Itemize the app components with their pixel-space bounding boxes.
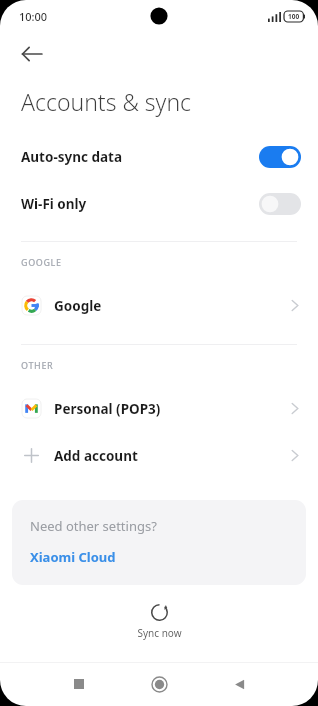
button[interactable]: Home [140, 665, 178, 703]
staticText: Personal (POP3) [54, 400, 161, 418]
button[interactable]: Back [220, 665, 258, 703]
button[interactable]: Need other settings? [12, 500, 306, 585]
button[interactable]: Wi-Fi only [0, 180, 318, 227]
staticText: Google [54, 297, 102, 315]
button[interactable]: Recents [60, 665, 98, 703]
button[interactable]: Add account [0, 432, 318, 479]
staticText: Need other settings? [30, 517, 157, 535]
button[interactable]: Back [10, 32, 54, 76]
staticText: Wi-Fi only [21, 195, 87, 213]
staticText: Accounts & sync [21, 86, 192, 117]
staticText: OTHER [21, 359, 54, 371]
button[interactable]: Sync now [0, 604, 318, 640]
staticText: Xiaomi Cloud [30, 548, 116, 566]
staticText: 100 [288, 12, 300, 21]
button[interactable]: Auto-sync data [0, 133, 318, 180]
button[interactable]: Google [0, 282, 318, 329]
staticText: GOOGLE [21, 256, 62, 268]
staticText: Add account [54, 447, 138, 465]
staticText: Sync now [137, 626, 182, 640]
button[interactable]: Personal (POP3) [0, 385, 318, 432]
staticText: 10:00 [19, 9, 48, 24]
staticText: Auto-sync data [21, 148, 123, 166]
